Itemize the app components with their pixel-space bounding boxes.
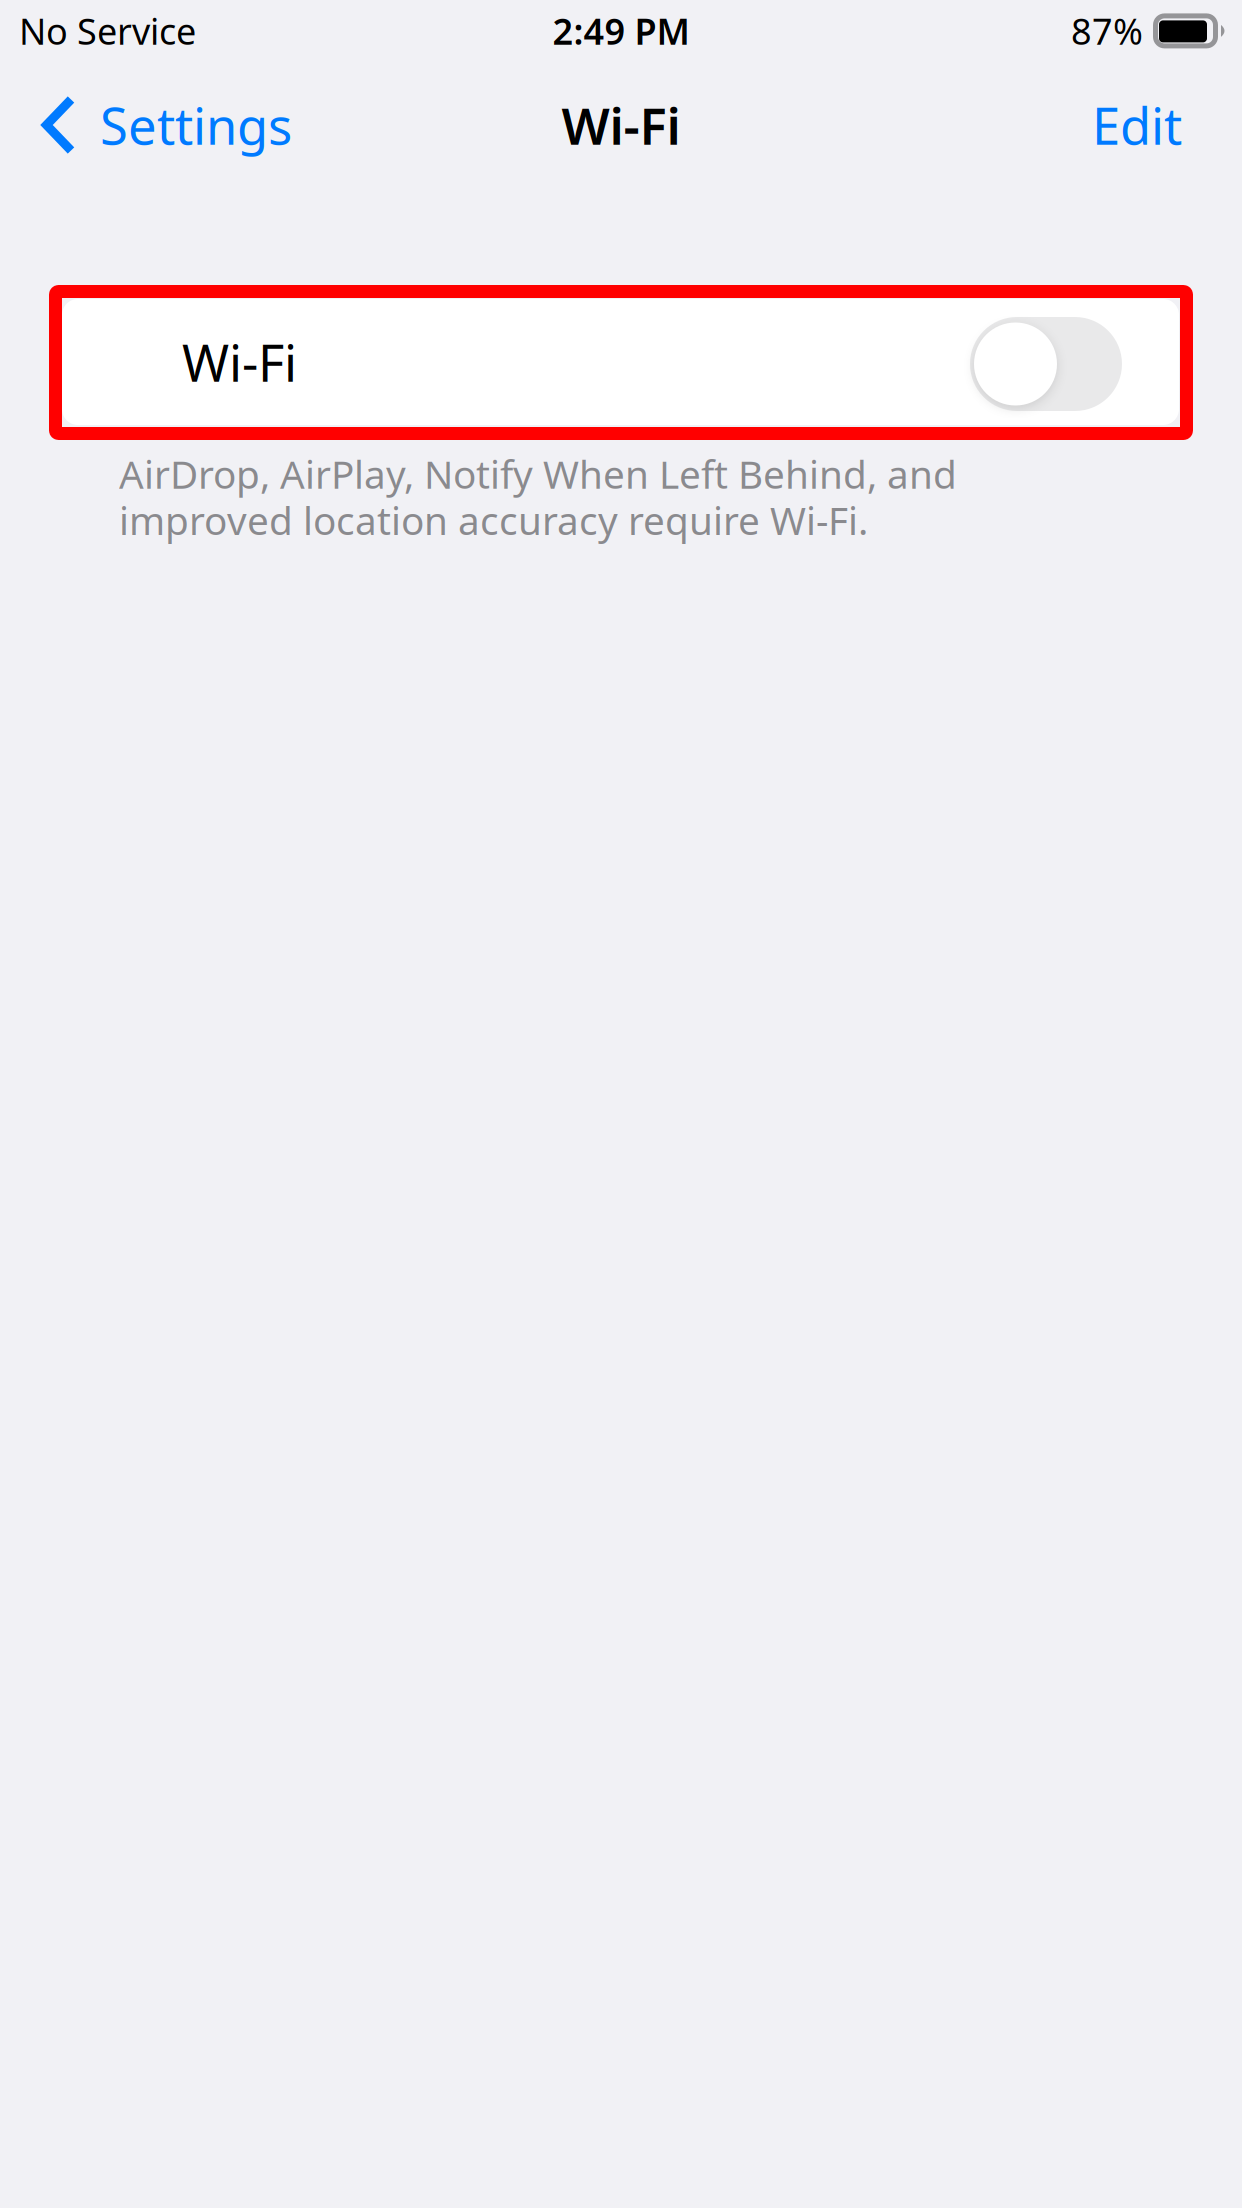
button[interactable]: Wi-Fi — [62, 299, 1179, 425]
button[interactable]: Edit — [1068, 76, 1242, 174]
staticText: AirDrop, AirPlay, Notify When Left Behin… — [119, 448, 957, 546]
staticText: 87% — [1071, 7, 1143, 55]
staticText: Wi-Fi — [182, 328, 297, 396]
staticText: 2:49 PM — [552, 7, 689, 55]
button[interactable]: Settings — [0, 76, 316, 174]
staticText: Edit — [1092, 91, 1182, 159]
staticText: Settings — [100, 91, 292, 159]
staticText: Wi-Fi — [561, 91, 680, 159]
staticText: No Service — [19, 7, 196, 55]
